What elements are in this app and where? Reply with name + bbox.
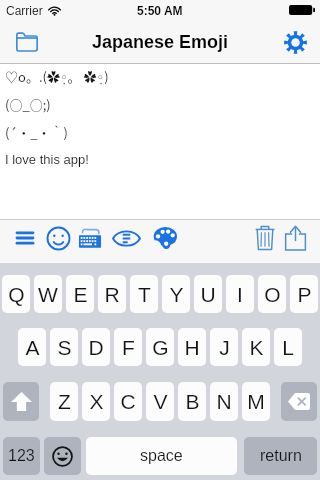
button[interactable]: return [244, 437, 317, 475]
staticText: Q [8, 283, 25, 306]
button[interactable]: Z [50, 382, 78, 421]
staticText: return [260, 447, 302, 465]
button[interactable]: Folders [8, 23, 46, 61]
button[interactable]: 123 [3, 437, 40, 475]
button[interactable]: Delete [246, 219, 284, 257]
button[interactable]: T [130, 275, 158, 313]
button[interactable]: E [66, 275, 94, 313]
staticText: L [282, 336, 294, 359]
staticText: Y [169, 283, 184, 306]
button[interactable]: B [178, 382, 206, 421]
button[interactable]: Settings [276, 23, 314, 61]
staticText: M [247, 390, 265, 413]
button[interactable]: A [18, 328, 46, 366]
staticText: C [120, 390, 136, 413]
staticText: Z [58, 390, 71, 413]
button[interactable]: G [146, 328, 174, 366]
button[interactable]: Emoticons [39, 219, 77, 257]
button[interactable]: X [82, 382, 110, 421]
button[interactable]: J [210, 328, 238, 366]
staticText: I love this app! [5, 152, 89, 167]
button[interactable]: V [146, 382, 174, 421]
button[interactable]: H [178, 328, 206, 366]
staticText: P [297, 283, 312, 306]
staticText: G [152, 336, 169, 359]
button[interactable]: K [242, 328, 270, 366]
staticText: W [38, 283, 58, 306]
button[interactable]: Share [276, 219, 314, 257]
staticText: D [88, 336, 104, 359]
button[interactable]: O [258, 275, 286, 313]
button[interactable]: Y [162, 275, 190, 313]
button[interactable]: F [114, 328, 142, 366]
staticText: O [264, 283, 281, 306]
button[interactable]: D [82, 328, 110, 366]
staticText: R [104, 283, 120, 306]
button[interactable]: Keyboard [71, 219, 109, 257]
staticText: space [140, 447, 183, 465]
staticText: B [185, 390, 200, 413]
staticText: J [219, 336, 230, 359]
button[interactable]: C [114, 382, 142, 421]
button[interactable]: R [98, 275, 126, 313]
staticText: K [249, 336, 264, 359]
button[interactable]: Emoji [44, 437, 81, 475]
staticText: U [200, 283, 216, 306]
staticText: S [57, 336, 72, 359]
staticText: Carrier [6, 4, 43, 17]
staticText: I [237, 283, 243, 306]
button[interactable]: space [86, 437, 237, 475]
button[interactable]: P [290, 275, 318, 313]
staticText: (○_○;) [5, 95, 51, 114]
button[interactable]: W [34, 275, 62, 313]
staticText: Japanese Emoji [92, 32, 229, 52]
staticText: A [25, 336, 40, 359]
button[interactable]: Colors [146, 219, 184, 257]
staticText: 123 [8, 447, 35, 465]
button[interactable]: Backspace [281, 382, 317, 421]
button[interactable]: I [226, 275, 254, 313]
staticText: E [73, 283, 88, 306]
button[interactable]: Q [2, 275, 30, 313]
staticText: V [153, 390, 168, 413]
button[interactable]: Shift [3, 382, 39, 421]
button[interactable]: L [274, 328, 302, 366]
staticText: T [138, 283, 151, 306]
button[interactable]: Text style [107, 219, 145, 257]
button[interactable]: Menu [6, 219, 44, 257]
button[interactable]: U [194, 275, 222, 313]
button[interactable]: M [242, 382, 270, 421]
staticText: X [89, 390, 104, 413]
staticText: F [122, 336, 135, 359]
staticText: ♡o。.(✿◦̣。 ✿◦̣) [5, 67, 109, 86]
staticText: N [216, 390, 232, 413]
button[interactable]: S [50, 328, 78, 366]
staticText: 5:50 AM [137, 4, 183, 17]
button[interactable]: N [210, 382, 238, 421]
staticText: (´・_・｀) [5, 123, 68, 142]
staticText: H [184, 336, 200, 359]
